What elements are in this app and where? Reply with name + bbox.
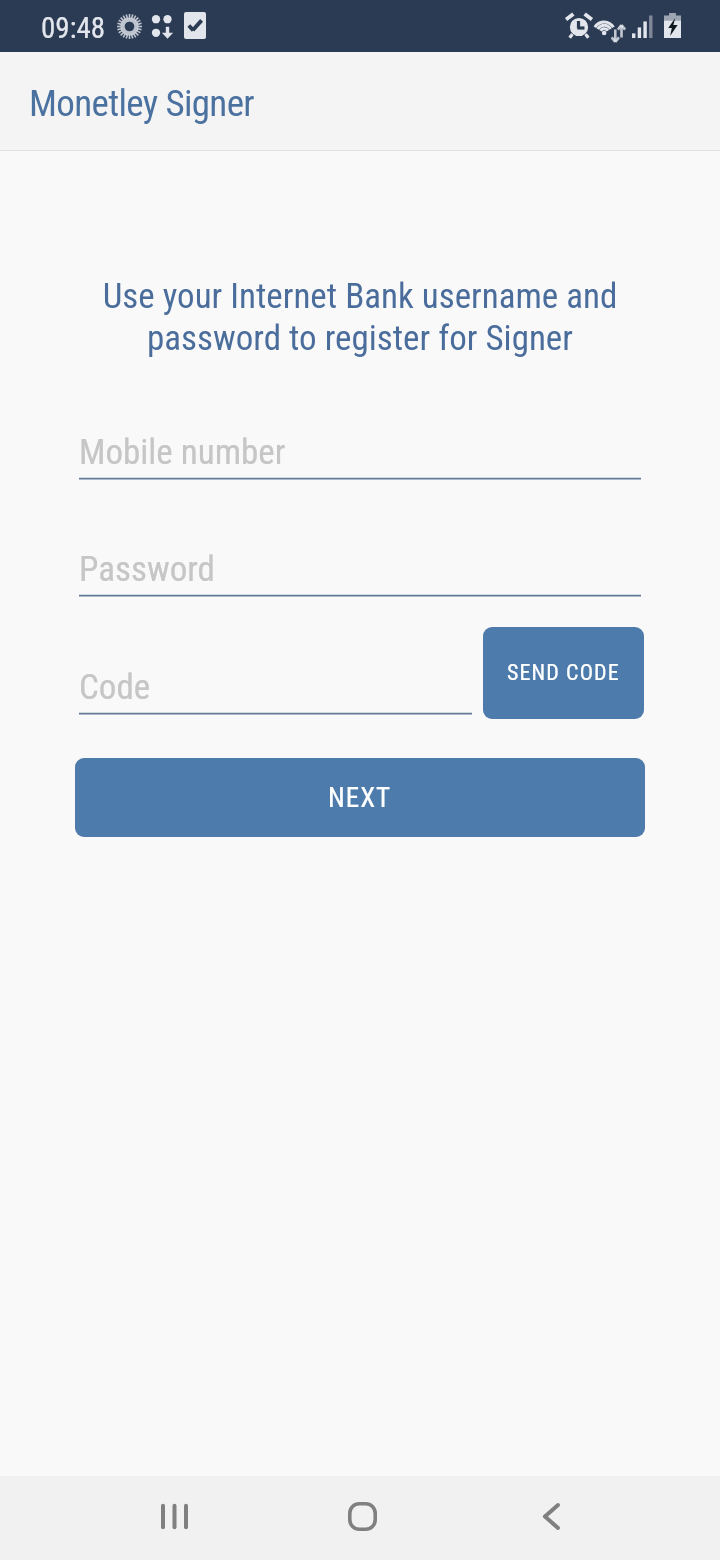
button[interactable]: Home [322, 1474, 402, 1558]
staticText: Monetley Signer [29, 82, 254, 125]
staticText: Mobile number [79, 432, 286, 473]
button[interactable]: Back [511, 1474, 591, 1558]
button[interactable]: Recent apps [135, 1474, 215, 1558]
button[interactable]: Code [79, 643, 472, 715]
staticText: Password [79, 549, 215, 590]
button[interactable]: Password [79, 525, 641, 597]
staticText: 09:48 [41, 11, 106, 45]
button[interactable]: SEND CODE [483, 627, 644, 719]
button[interactable]: Mobile number [79, 408, 641, 480]
button[interactable]: NEXT [75, 758, 645, 837]
staticText: Use your Internet Bank username and pass… [86, 276, 634, 359]
staticText: SEND CODE [507, 660, 620, 686]
staticText: NEXT [328, 782, 392, 814]
staticText: Code [79, 667, 151, 708]
